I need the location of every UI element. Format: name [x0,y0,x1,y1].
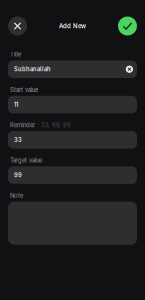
button[interactable]: 99 [8,166,137,184]
staticText: Reminder [10,121,35,129]
staticText: Note [10,192,23,199]
staticText: · 33, 66, 99 [35,121,71,129]
staticText: Start value [10,86,38,93]
staticText: 99 [14,172,22,179]
staticText: Target value [10,157,42,164]
button[interactable]: 11 [8,96,137,113]
button[interactable]: Save [118,16,137,35]
button[interactable]: Subhanallah [8,60,137,78]
button[interactable]: 33 [8,131,137,149]
staticText: Title [10,51,21,58]
staticText: 11 [14,101,18,108]
button[interactable]: Close [8,16,27,35]
staticText: 33 [14,136,22,143]
staticText: Add New [59,22,86,30]
staticText: Subhanallah [14,66,51,73]
